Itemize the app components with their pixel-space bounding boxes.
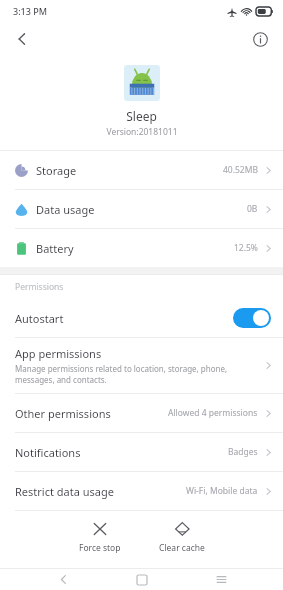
button[interactable]: Back (6, 23, 38, 55)
staticText: Version:20181011 (106, 126, 178, 138)
button[interactable]: Recent apps (204, 569, 238, 590)
staticText: App permissions (15, 346, 102, 361)
button[interactable]: Home (125, 569, 159, 590)
staticText: Autostart (15, 311, 64, 326)
staticText: 12.5% (234, 242, 258, 254)
staticText: Force stop (79, 542, 121, 554)
staticText: Permissions (15, 281, 64, 293)
staticText: Other permissions (15, 406, 111, 421)
staticText: Wi-Fi, Mobile data (186, 485, 258, 497)
staticText: Manage permissions related to location, … (15, 363, 228, 385)
staticText: Data usage (36, 202, 95, 217)
staticText: Badges (228, 446, 258, 458)
button[interactable]: Battery (0, 229, 283, 267)
button[interactable]: Notifications (0, 433, 283, 471)
button[interactable]: Restrict data usage (0, 472, 283, 510)
button[interactable]: App info (244, 23, 276, 55)
staticText: Sleep (126, 108, 157, 124)
button[interactable]: App permissions (0, 338, 283, 393)
button[interactable]: Back (46, 569, 80, 590)
button[interactable]: Force stop (73, 519, 127, 556)
staticText: Allowed 4 permissions (168, 407, 258, 419)
staticText: 3:13 PM (13, 5, 47, 17)
button[interactable]: Autostart (0, 299, 283, 337)
button[interactable]: Other permissions (0, 394, 283, 432)
button[interactable]: Storage (0, 151, 283, 189)
staticText: 40.52MB (223, 164, 258, 176)
staticText: 0B (247, 203, 258, 215)
staticText: Storage (36, 163, 77, 178)
button[interactable]: Data usage (0, 190, 283, 228)
staticText: Notifications (15, 445, 81, 460)
staticText: Battery (36, 241, 74, 256)
button[interactable]: Clear cache (153, 519, 211, 556)
staticText: Restrict data usage (15, 484, 114, 499)
staticText: Clear cache (159, 542, 205, 554)
